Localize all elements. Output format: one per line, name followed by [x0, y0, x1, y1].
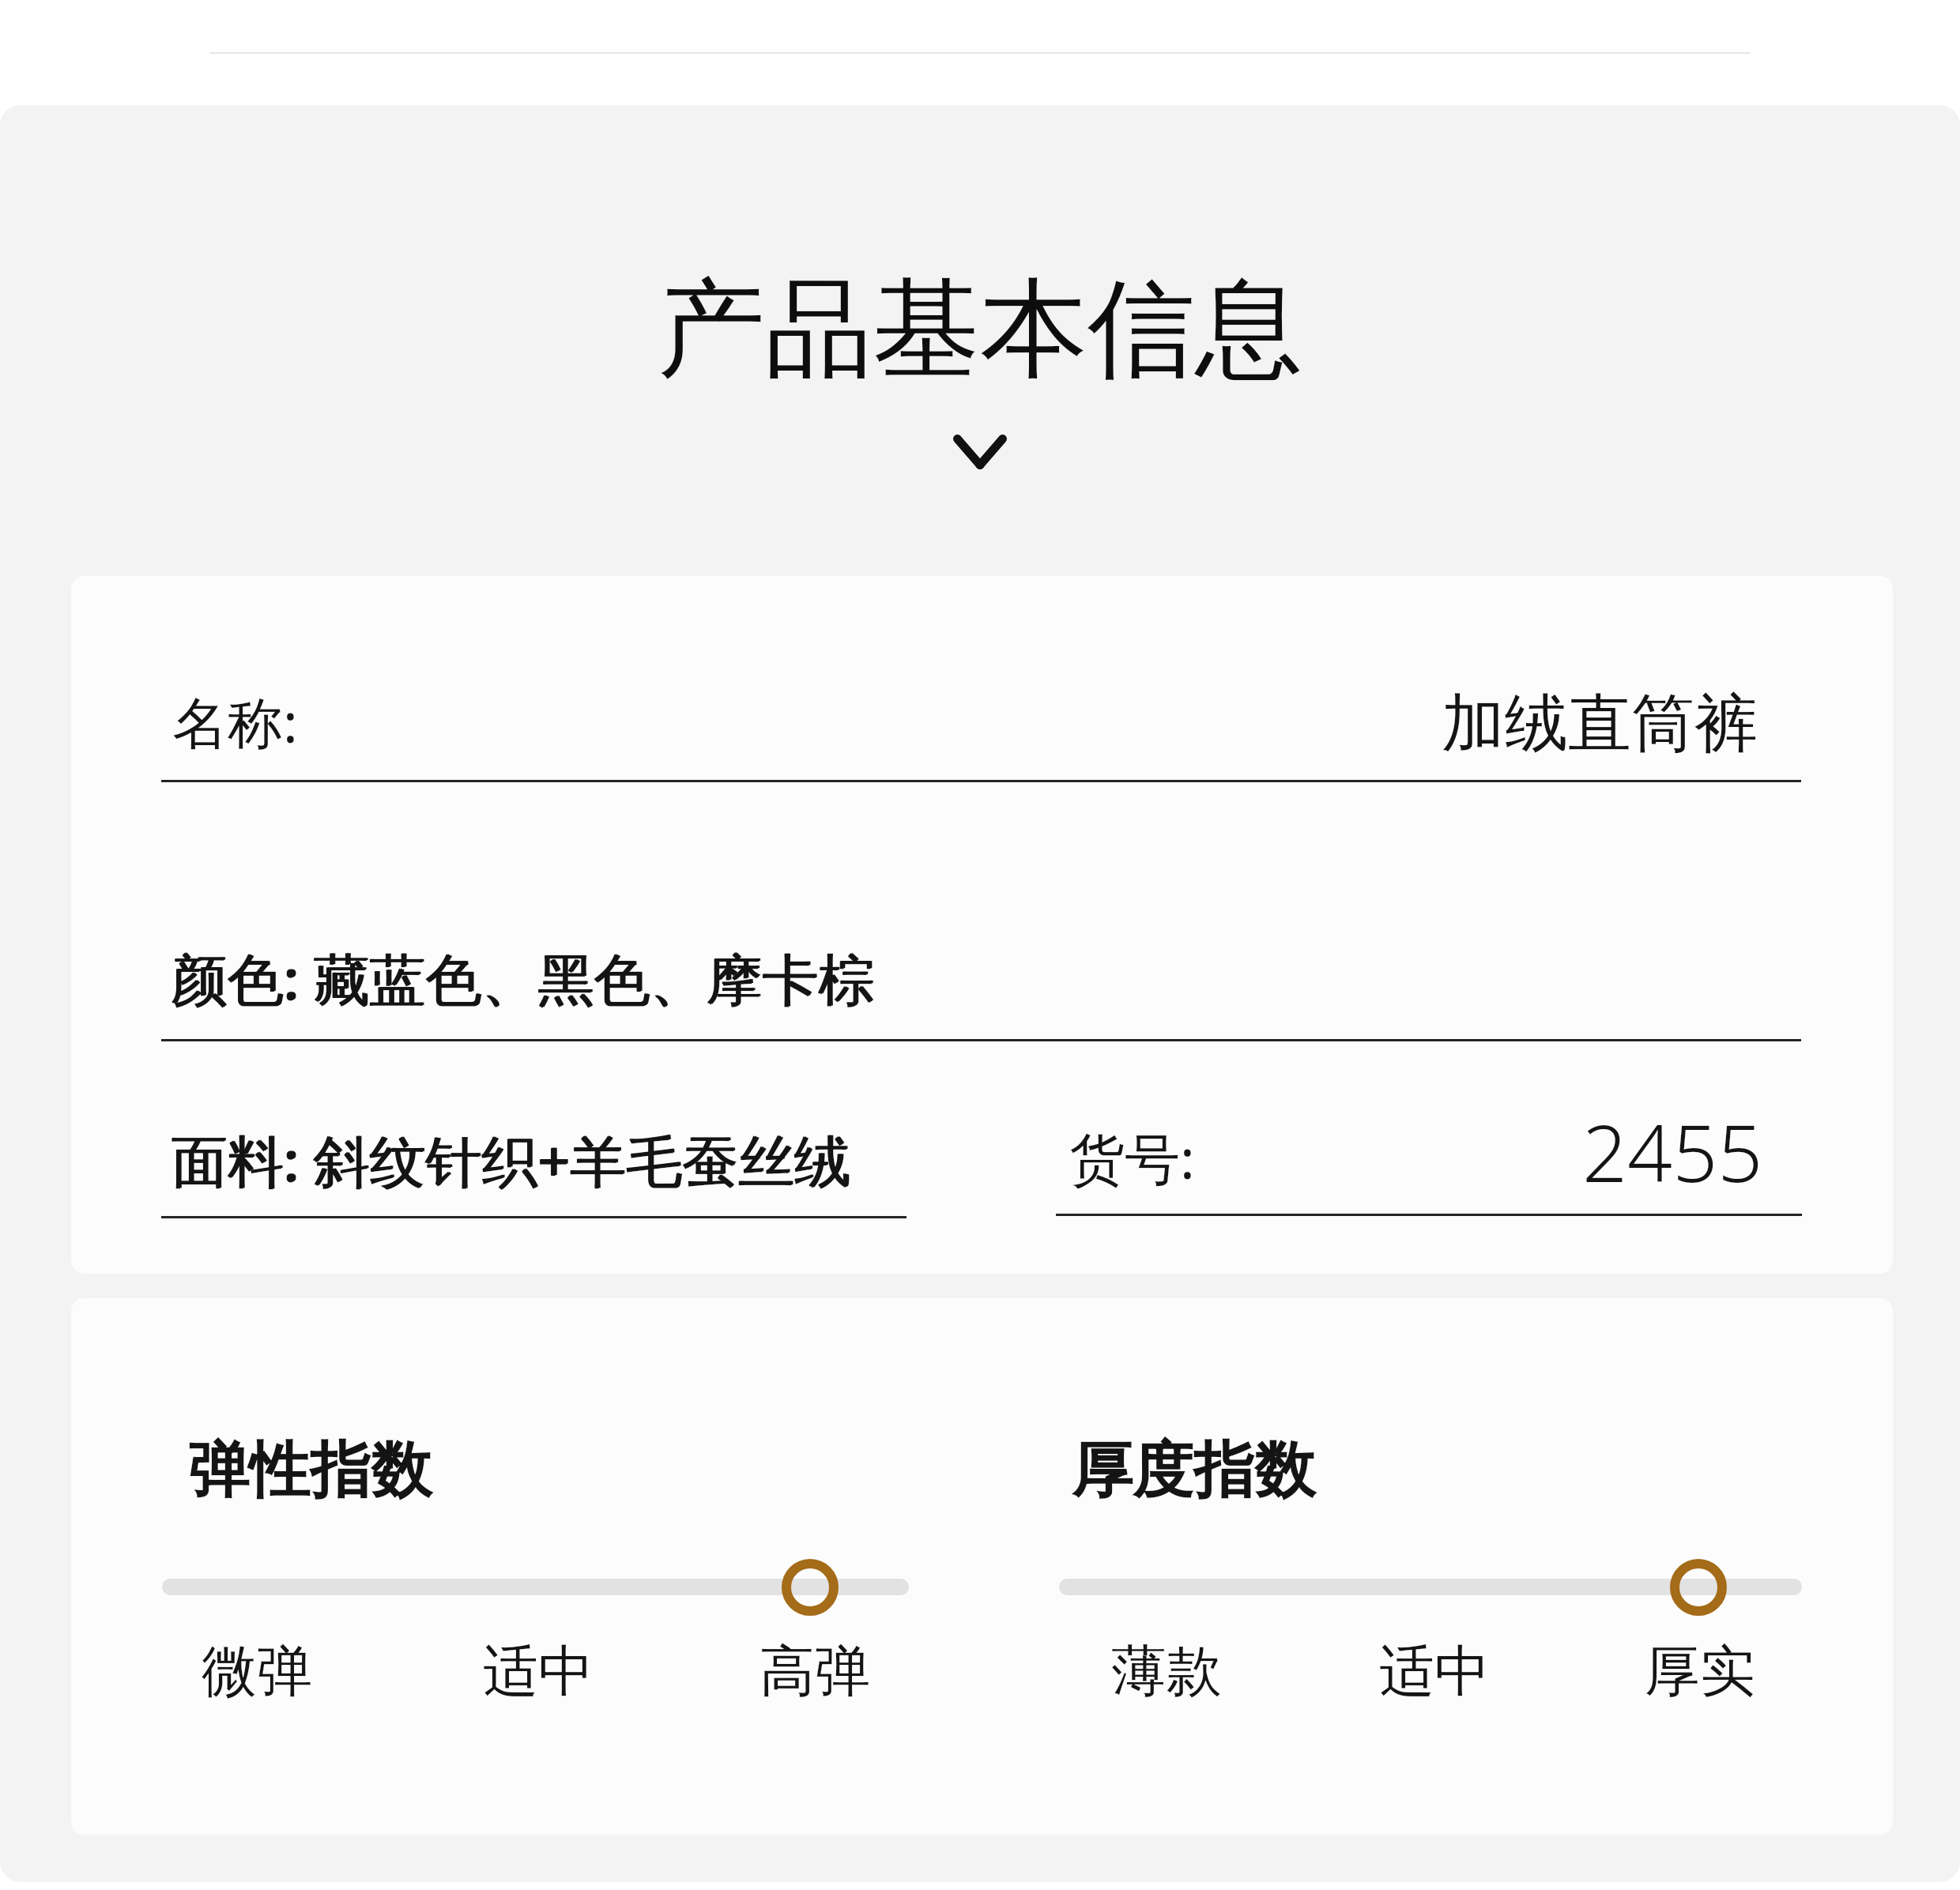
- staticText: 高弹: [759, 1637, 870, 1707]
- button[interactable]: 厚度指数: [1072, 1433, 1315, 1509]
- staticText: 厚实: [1645, 1637, 1755, 1707]
- staticText: 面料: 斜纹针织+羊毛蚕丝绒: [172, 1121, 852, 1198]
- staticText: 微弹: [202, 1637, 312, 1707]
- staticText: 适中: [1379, 1637, 1490, 1707]
- button[interactable]: 货号:: [1069, 1120, 1195, 1195]
- button[interactable]: 厚实: [1645, 1637, 1755, 1707]
- staticText: 颜色: 藏蓝色、黑色、摩卡棕: [171, 940, 874, 1017]
- button[interactable]: 高弹: [759, 1637, 870, 1707]
- staticText: 2455: [1582, 1097, 1763, 1205]
- button[interactable]: 微弹: [202, 1637, 312, 1707]
- staticText: 厚度指数: [1072, 1433, 1315, 1509]
- button[interactable]: 薄款: [1111, 1637, 1222, 1707]
- button[interactable]: 弹性指数 滑块 高弹: [782, 1559, 839, 1616]
- button[interactable]: 适中: [1379, 1637, 1490, 1707]
- button[interactable]: 名称:: [172, 683, 298, 759]
- button[interactable]: 展开产品基本信息: [944, 427, 1016, 477]
- staticText: 颜色: 藏蓝色、黑色、摩卡棕: [171, 939, 874, 1016]
- staticText: 面料: 斜纹针织+羊毛蚕丝绒: [171, 1122, 850, 1199]
- button[interactable]: 加绒直筒裤: [1442, 684, 1758, 764]
- button[interactable]: 颜色: 藏蓝色、黑色、摩卡棕: [171, 939, 874, 1016]
- button[interactable]: 2455: [1582, 1097, 1763, 1205]
- staticText: 加绒直筒裤: [1442, 684, 1758, 764]
- staticText: 弹性指数: [188, 1433, 432, 1509]
- button[interactable]: 面料: 斜纹针织+羊毛蚕丝绒: [171, 1121, 850, 1198]
- button[interactable]: 适中: [483, 1637, 594, 1707]
- staticText: 货号:: [1069, 1120, 1195, 1195]
- staticText: 面料: 斜纹针织+羊毛蚕丝绒: [171, 1121, 850, 1198]
- button[interactable]: 弹性指数: [188, 1433, 432, 1509]
- staticText: 产品基本信息: [658, 262, 1302, 397]
- staticText: 薄款: [1111, 1637, 1222, 1707]
- button[interactable]: 厚度指数 滑块 厚实: [1670, 1559, 1727, 1616]
- staticText: 颜色: 藏蓝色、黑色、摩卡棕: [172, 939, 876, 1016]
- staticText: 适中: [483, 1637, 594, 1707]
- staticText: 名称:: [172, 683, 298, 759]
